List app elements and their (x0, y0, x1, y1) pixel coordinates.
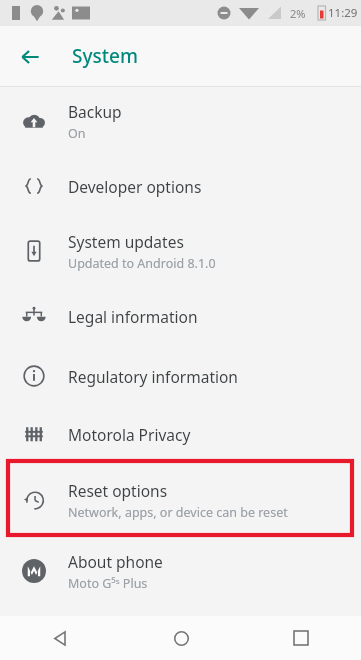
button[interactable]: About phone (0, 537, 361, 605)
staticText: Legal information (68, 306, 198, 327)
staticText: System updates (68, 231, 184, 252)
button[interactable]: Backup (0, 87, 361, 155)
button[interactable]: Back (8, 35, 52, 79)
staticText: Network, apps, or device can be reset (68, 504, 288, 521)
staticText: 2% (290, 6, 306, 21)
staticText: Reset options (68, 480, 168, 501)
button[interactable]: Recent apps (241, 616, 361, 660)
button[interactable]: Home (121, 616, 241, 660)
button[interactable]: Back (0, 616, 121, 660)
button[interactable]: Legal information (0, 285, 361, 347)
staticText: On (68, 125, 86, 142)
staticText: Updated to Android 8.1.0 (68, 255, 216, 272)
staticText: Motorola Privacy (68, 424, 191, 445)
staticText: 11:29 (328, 5, 358, 21)
staticText: About phone (68, 551, 163, 572)
button[interactable]: Developer options (0, 155, 361, 217)
button[interactable]: Motorola Privacy (0, 405, 361, 463)
staticText: Developer options (68, 176, 202, 197)
button[interactable]: Reset options (0, 463, 361, 537)
staticText: Backup (68, 101, 122, 122)
staticText: Moto G⁵ˢ Plus (68, 575, 148, 592)
button[interactable]: Regulatory information (0, 347, 361, 405)
button[interactable]: System updates (0, 217, 361, 285)
staticText: Regulatory information (68, 366, 238, 387)
staticText: System (72, 43, 138, 69)
